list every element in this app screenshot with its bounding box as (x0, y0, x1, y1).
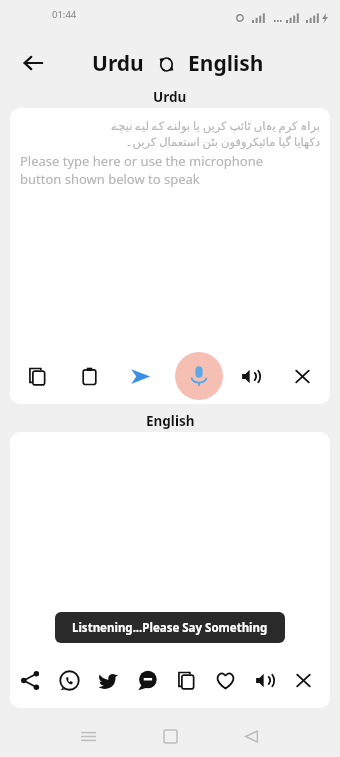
button[interactable]: Send (121, 348, 159, 404)
button[interactable]: Microphone (175, 352, 223, 400)
button[interactable]: Copy (167, 652, 205, 708)
button[interactable]: Home (150, 715, 190, 757)
staticText: English (188, 49, 264, 78)
button[interactable]: WhatsApp (50, 652, 88, 708)
button[interactable]: Share (11, 652, 49, 708)
staticText: Urdu (153, 88, 187, 106)
staticText: 01:44 (52, 8, 77, 21)
button[interactable]: Recents (68, 715, 108, 757)
staticText: براہ کرم یہاں ٹائپ کریں یا بولنے کے لیے … (20, 118, 320, 134)
button[interactable]: Favorite (206, 652, 244, 708)
button[interactable]: Urdu (90, 49, 146, 78)
button[interactable]: Speak (231, 348, 269, 404)
button[interactable]: English (186, 49, 266, 78)
staticText: button shown below to speak (20, 170, 320, 188)
button[interactable]: Close (284, 652, 322, 708)
staticText: Urdu (92, 49, 144, 78)
button[interactable]: Swap languages (153, 51, 179, 77)
staticText: Listnening...Please Say Something (72, 620, 268, 636)
staticText: Please type here or use the microphone (20, 152, 320, 170)
button[interactable]: Twitter (89, 652, 127, 708)
button[interactable]: Back (231, 715, 271, 757)
button[interactable]: Speak (245, 652, 283, 708)
staticText: English (146, 412, 195, 430)
button[interactable]: Close (283, 348, 321, 404)
button[interactable]: Copy (18, 348, 56, 404)
button[interactable]: Back (10, 42, 56, 84)
button[interactable]: SMS (128, 652, 166, 708)
button[interactable]: Paste (70, 348, 108, 404)
staticText: دکھایا گیا مائیکروفون بٹن استعمال کریں۔ (20, 134, 320, 150)
